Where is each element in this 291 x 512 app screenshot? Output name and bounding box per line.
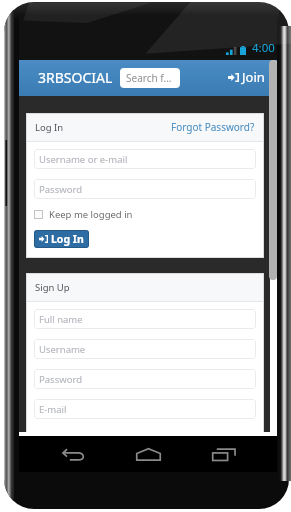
staticText: Password xyxy=(39,183,82,196)
staticText: Password xyxy=(39,373,82,386)
staticText: 4:00 xyxy=(252,40,275,56)
button[interactable]: Keep me logged in xyxy=(34,208,133,221)
button[interactable]: Back xyxy=(54,439,92,469)
button[interactable]: Join xyxy=(224,67,269,87)
button[interactable]: Password xyxy=(34,179,256,199)
button[interactable]: E-mail xyxy=(34,399,256,419)
button[interactable]: Full name xyxy=(34,309,256,329)
staticText: Sign Up xyxy=(35,281,70,294)
staticText: 3RBSOCIAL xyxy=(38,68,113,87)
button[interactable]: Home xyxy=(129,439,167,469)
staticText: E-mail xyxy=(39,403,67,416)
staticText: Join xyxy=(242,68,265,86)
button[interactable]: Username xyxy=(34,339,256,359)
button[interactable]: Recent apps xyxy=(205,439,243,469)
button[interactable]: Search f... xyxy=(120,68,180,88)
staticText: Username or e-mail xyxy=(39,153,128,166)
staticText: Search f... xyxy=(126,71,172,85)
staticText: Keep me logged in xyxy=(49,208,133,221)
button[interactable]: Username or e-mail xyxy=(34,149,256,169)
staticText: Log In xyxy=(51,232,84,246)
staticText: Log In xyxy=(35,121,64,134)
button[interactable]: Password xyxy=(34,369,256,389)
staticText: Full name xyxy=(39,313,83,326)
button[interactable]: Log In xyxy=(34,230,89,248)
button[interactable]: Forgot Password? xyxy=(171,120,255,134)
button[interactable]: 3RBSOCIAL xyxy=(33,66,118,89)
staticText: Username xyxy=(39,343,86,356)
